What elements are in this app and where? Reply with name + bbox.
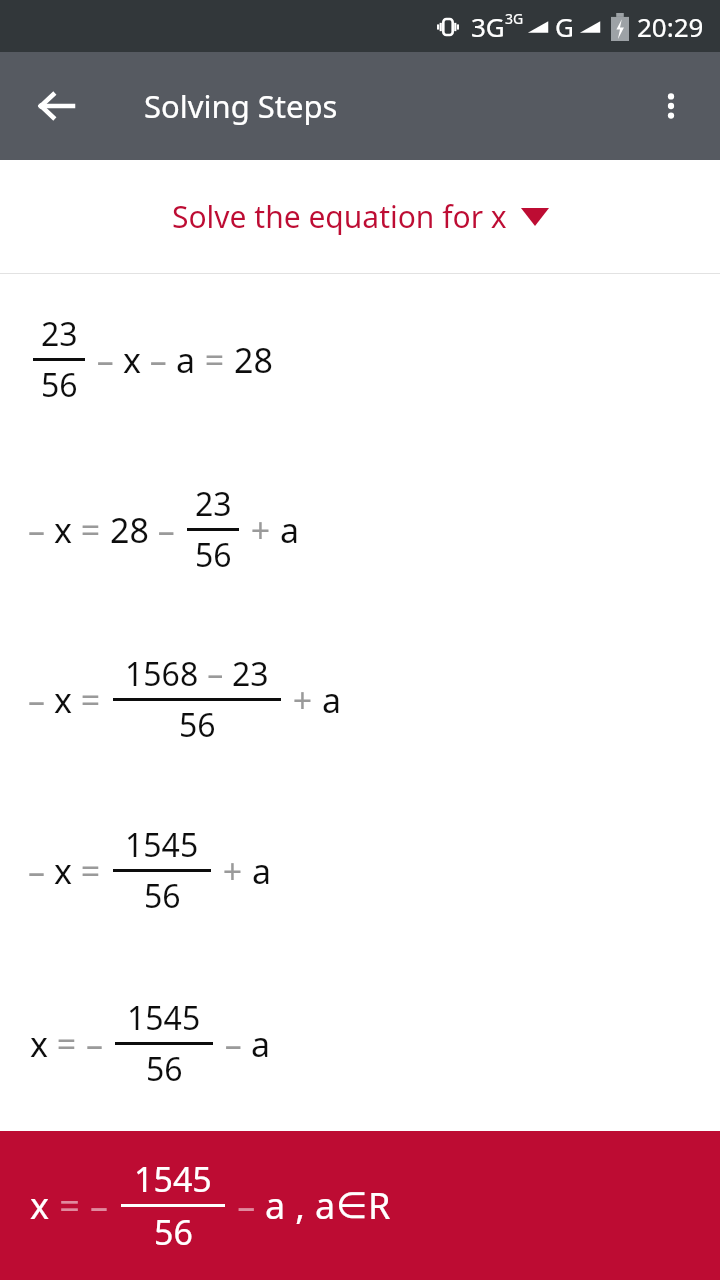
staticText: Solve the equation for x [172,196,507,237]
staticText: 1545 [125,823,199,867]
staticText: = [72,507,110,553]
staticText: – [228,1181,265,1230]
staticText: 56 [144,874,181,918]
staticText: 28 [110,507,149,553]
staticText: = [196,337,234,383]
staticText: 56 [41,363,78,407]
staticText: a [251,1021,271,1067]
staticText: a [322,677,342,723]
button[interactable]: x [0,956,720,1131]
staticText: 1545 [127,996,201,1040]
staticText: = [72,848,110,894]
staticText: + [284,677,322,723]
staticText: – [88,337,123,383]
staticText: – [28,507,54,553]
staticText: G [555,9,574,44]
staticText: ∈ [336,1185,368,1227]
button[interactable]: – [0,784,720,956]
staticText: x [54,848,72,894]
staticText: – [141,337,176,383]
staticText: 20:29 [637,9,704,44]
button[interactable]: – [0,444,720,614]
staticText: a [265,1181,286,1230]
staticText: x [30,1181,50,1230]
staticText: x [54,507,72,553]
button[interactable]: 23 [0,274,720,444]
staticText: – [199,652,232,696]
staticText: a [315,1181,336,1230]
staticText: = [50,1181,90,1230]
staticText: 23 [41,312,78,356]
staticText: = [72,677,110,723]
staticText: = [48,1021,86,1067]
staticText: 56 [179,703,216,747]
staticText: 23 [195,482,232,526]
staticText: 56 [154,1209,193,1255]
staticText: – [149,507,184,553]
staticText: + [242,507,280,553]
button[interactable]: x [0,1131,720,1280]
staticText: 56 [195,533,232,577]
staticText: 3G [505,9,524,28]
staticText: – [86,1021,112,1067]
button[interactable]: – [0,614,720,784]
staticText: a [280,507,300,553]
button[interactable]: Back [22,71,92,141]
staticText: 56 [146,1047,183,1091]
staticText: 23 [232,652,269,696]
staticText: 1545 [134,1156,212,1202]
staticText: – [90,1181,118,1230]
button[interactable]: Solve the equation for x [0,160,720,273]
staticText: R [368,1181,391,1230]
staticText: – [28,848,54,894]
staticText: x [123,337,141,383]
staticText: , [286,1181,315,1230]
staticText: x [30,1021,48,1067]
staticText: 1568 [125,652,199,696]
staticText: a [252,848,272,894]
staticText: a [176,337,196,383]
staticText: x [54,677,72,723]
staticText: Solving Steps [144,85,338,127]
staticText: 28 [234,337,273,383]
staticText: – [216,1021,251,1067]
staticText: – [28,677,54,723]
staticText: + [214,848,252,894]
button[interactable]: More options [640,75,702,137]
staticText: 3G [471,9,505,44]
